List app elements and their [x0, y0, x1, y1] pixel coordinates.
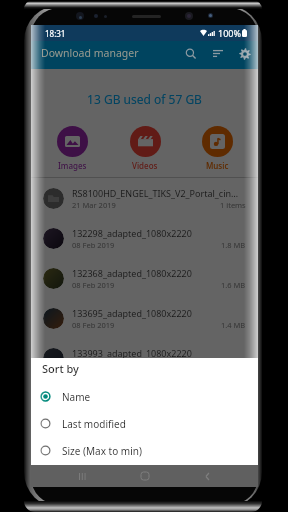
- staticText: 1.4 MB: [221, 320, 246, 330]
- button[interactable]: Back: [195, 465, 219, 487]
- staticText: 08 Feb 2019: [72, 320, 115, 330]
- staticText: Last modified: [62, 417, 126, 431]
- button[interactable]: 133695_adapted_1080x2220: [31, 298, 258, 338]
- button[interactable]: Last modified: [31, 410, 258, 437]
- staticText: 08 Feb 2019: [72, 240, 115, 250]
- staticText: 100%: [218, 27, 241, 39]
- button[interactable]: 133993_adapted_1080x2220: [31, 338, 258, 378]
- staticText: Download manager: [41, 46, 139, 60]
- staticText: 1 items: [220, 200, 246, 210]
- staticText: 133993_adapted_1080x2220: [72, 347, 192, 359]
- staticText: Name: [62, 390, 91, 404]
- button[interactable]: RS8100HD_ENGEL_TIKS_V2_Portal_cin…: [31, 178, 258, 218]
- staticText: 21 Mar 2019: [72, 200, 116, 210]
- staticText: 18:31: [45, 28, 66, 39]
- button[interactable]: Home: [133, 465, 157, 487]
- staticText: Music: [206, 160, 229, 171]
- staticText: Sort by: [42, 361, 79, 376]
- staticText: 1.6 MB: [221, 280, 246, 290]
- button[interactable]: Recents: [70, 465, 94, 487]
- staticText: 132298_adapted_1080x2220: [72, 227, 192, 239]
- button[interactable]: Settings: [231, 41, 258, 66]
- button[interactable]: Search: [177, 41, 204, 66]
- staticText: 08 Feb 2019: [72, 360, 115, 370]
- button[interactable]: Sort: [204, 41, 231, 66]
- button[interactable]: 132298_adapted_1080x2220: [31, 218, 258, 258]
- staticText: 133695_adapted_1080x2220: [72, 307, 192, 319]
- staticText: Size (Max to min): [62, 444, 142, 458]
- staticText: 13 GB used of 57 GB: [31, 91, 258, 107]
- staticText: Videos: [132, 160, 158, 171]
- staticText: 1.8 MB: [221, 240, 246, 250]
- button[interactable]: Size (Max to min): [31, 437, 258, 464]
- button[interactable]: Videos: [109, 126, 181, 171]
- button[interactable]: Music: [181, 126, 253, 171]
- staticText: 132368_adapted_1080x2220: [72, 267, 192, 279]
- staticText: Images: [58, 160, 87, 171]
- button[interactable]: 132368_adapted_1080x2220: [31, 258, 258, 298]
- staticText: 08 Feb 2019: [72, 280, 115, 290]
- button[interactable]: Name: [31, 383, 258, 410]
- button[interactable]: Images: [36, 126, 109, 171]
- staticText: RS8100HD_ENGEL_TIKS_V2_Portal_cin…: [72, 187, 239, 199]
